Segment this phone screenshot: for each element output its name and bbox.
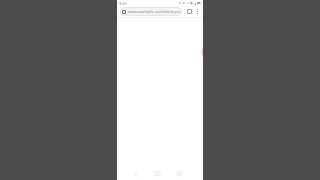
- button[interactable]: Tabs: [185, 6, 193, 16]
- button[interactable]: More options: [194, 8, 201, 15]
- button[interactable]: Recents: [168, 166, 190, 180]
- button[interactable]: www.example.com/some-pa: [120, 7, 182, 16]
- button[interactable]: Home: [146, 166, 168, 180]
- staticText: 9:41: [119, 1, 127, 6]
- staticText: www.example.com/some-pa: [128, 9, 180, 14]
